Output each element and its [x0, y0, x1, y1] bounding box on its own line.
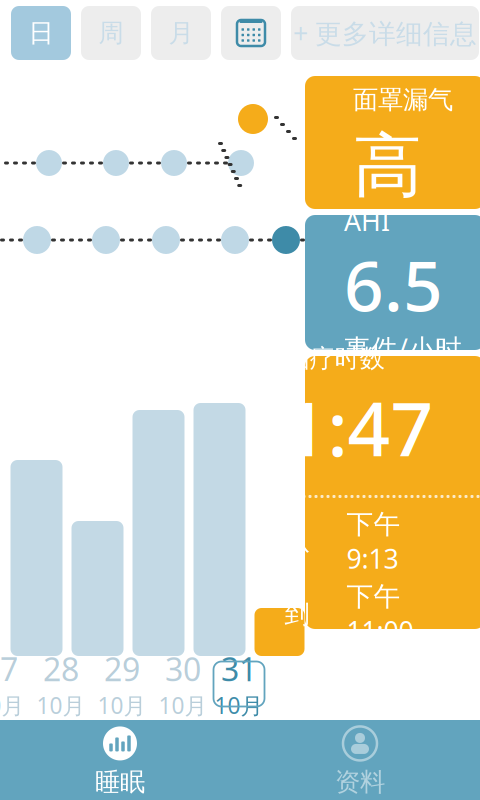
staticText: 28 [43, 648, 79, 690]
staticText: 治疗时数 [284, 343, 384, 374]
staticText: 下午11:00 [346, 580, 413, 648]
button[interactable]: 27 [0, 659, 30, 709]
button[interactable]: 日历 [221, 6, 281, 60]
button[interactable]: 31 [213, 661, 264, 706]
button[interactable]: 面罩漏气 [305, 76, 480, 209]
button[interactable]: 30 [152, 659, 213, 709]
staticText: 10月 [158, 690, 207, 720]
staticText: 到 [284, 599, 309, 630]
staticText: + 更多详细信息 [293, 15, 477, 51]
button[interactable]: 28 [30, 659, 91, 709]
staticText: 面罩漏气 [353, 84, 453, 115]
button[interactable]: 治疗时数 [305, 356, 480, 629]
staticText: 月 [168, 17, 193, 48]
staticText: 事件/小时 [344, 330, 462, 366]
staticText: 1:47 [284, 378, 433, 477]
staticText: 29 [104, 648, 140, 690]
button[interactable]: 月 [151, 6, 211, 60]
staticText: 27 [0, 648, 18, 690]
staticText: 10月 [214, 690, 263, 720]
staticText: 10月 [0, 690, 24, 720]
staticText: 30 [165, 648, 201, 690]
button[interactable]: 周 [81, 6, 141, 60]
staticText: 从 [284, 526, 309, 558]
staticText: 6.5 [344, 238, 443, 331]
staticText: 周 [98, 17, 123, 48]
button[interactable]: + 更多详细信息 [291, 6, 479, 60]
button[interactable]: 睡眠 [0, 720, 240, 800]
button[interactable]: 资料 [240, 720, 480, 800]
button[interactable]: AHI [305, 215, 480, 350]
button[interactable]: 日 [11, 6, 71, 60]
staticText: 10月 [36, 690, 85, 720]
staticText: 睡眠 [95, 766, 145, 797]
staticText: 31 [221, 648, 257, 690]
staticText: 资料 [335, 766, 385, 797]
staticText: 下午9:13 [346, 508, 400, 576]
staticText: AHI [344, 203, 390, 238]
staticText: 10月 [97, 690, 146, 720]
staticText: 高 [353, 123, 422, 209]
button[interactable]: 29 [91, 659, 152, 709]
staticText: 日 [28, 17, 53, 48]
